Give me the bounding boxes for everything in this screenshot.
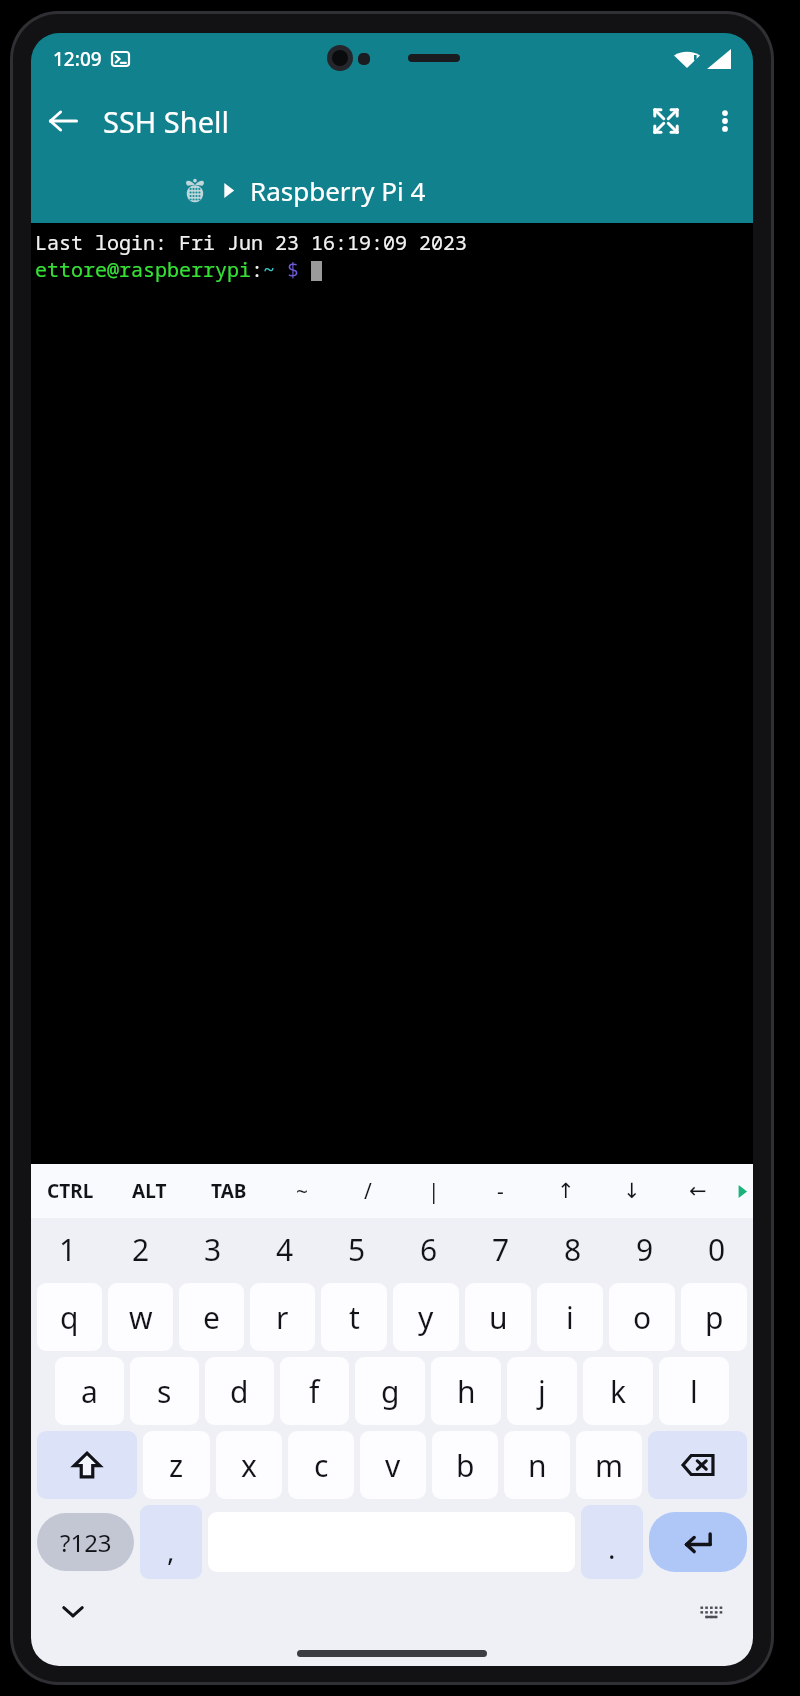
button[interactable]: . <box>581 1505 643 1579</box>
staticText: Raspberry Pi 4 <box>250 173 426 208</box>
button[interactable]: s <box>130 1357 199 1425</box>
button[interactable]: x <box>216 1431 282 1499</box>
staticText: p <box>705 1297 724 1338</box>
staticText: b <box>456 1445 475 1486</box>
staticText: SSH Shell <box>103 102 230 141</box>
staticText: | <box>428 1177 440 1206</box>
staticText: / <box>364 1177 372 1206</box>
staticText: 7 <box>492 1229 510 1270</box>
staticText: a <box>81 1371 98 1412</box>
staticText: ← <box>689 1179 707 1203</box>
button[interactable]: More options <box>697 93 753 149</box>
button[interactable]: 6 <box>393 1218 465 1280</box>
staticText: k <box>610 1371 627 1412</box>
button[interactable]: , <box>140 1505 202 1579</box>
button[interactable]: ALT <box>110 1164 189 1218</box>
button[interactable]: Enter <box>649 1512 747 1572</box>
button[interactable]: CTRL <box>31 1164 110 1218</box>
button[interactable]: ~ <box>269 1164 335 1218</box>
button[interactable]: y <box>393 1283 459 1351</box>
staticText: t <box>349 1297 360 1338</box>
button[interactable]: Fullscreen <box>635 90 697 152</box>
button[interactable]: o <box>609 1283 675 1351</box>
staticText: w <box>129 1297 153 1338</box>
button[interactable]: 4 <box>249 1218 321 1280</box>
button[interactable]: g <box>355 1357 425 1425</box>
staticText: Last login: Fri Jun 23 16:19:09 2023 <box>35 229 467 256</box>
button[interactable]: h <box>431 1357 501 1425</box>
staticText: u <box>489 1297 508 1338</box>
staticText: ?123 <box>60 1526 112 1559</box>
staticText: r <box>276 1297 289 1338</box>
button[interactable]: Backspace <box>648 1431 747 1499</box>
button[interactable]: j <box>507 1357 577 1425</box>
staticText: . <box>608 1529 616 1567</box>
button[interactable]: w <box>108 1283 173 1351</box>
button[interactable]: ← <box>665 1164 731 1218</box>
button[interactable]: n <box>504 1431 570 1499</box>
staticText: 2 <box>132 1229 150 1270</box>
button[interactable]: k <box>583 1357 653 1425</box>
button[interactable]: 1 <box>31 1218 104 1280</box>
staticText: , <box>167 1531 175 1569</box>
button[interactable]: 2 <box>104 1218 177 1280</box>
button[interactable]: z <box>143 1431 210 1499</box>
button[interactable]: f <box>280 1357 349 1425</box>
button[interactable]: i <box>537 1283 603 1351</box>
button[interactable]: a <box>55 1357 124 1425</box>
button[interactable]: | <box>401 1164 467 1218</box>
staticText: j <box>538 1371 546 1412</box>
button[interactable]: p <box>681 1283 747 1351</box>
staticText: 9 <box>636 1229 654 1270</box>
staticText: q <box>60 1297 79 1338</box>
button[interactable]: 7 <box>465 1218 537 1280</box>
button[interactable]: 5 <box>321 1218 393 1280</box>
button[interactable]: l <box>659 1357 729 1425</box>
button[interactable]: 3 <box>177 1218 249 1280</box>
staticText: s <box>157 1371 172 1412</box>
button[interactable]: ?123 <box>37 1513 134 1571</box>
button[interactable]: c <box>288 1431 354 1499</box>
button[interactable]: t <box>321 1283 387 1351</box>
staticText: ettore@raspberrypi:~ $ <box>35 256 311 283</box>
staticText: ~ <box>296 1177 309 1206</box>
staticText: l <box>690 1371 698 1412</box>
staticText: 6 <box>420 1229 438 1270</box>
staticText: v <box>385 1445 401 1486</box>
button[interactable]: ↓ <box>599 1164 665 1218</box>
staticText: c <box>314 1445 329 1486</box>
button[interactable]: 9 <box>609 1218 681 1280</box>
staticText: 4 <box>276 1229 294 1270</box>
button[interactable]: 0 <box>681 1218 753 1280</box>
button[interactable]: Shift <box>37 1431 137 1499</box>
staticText: 3 <box>204 1229 222 1270</box>
button[interactable]: u <box>465 1283 531 1351</box>
button[interactable]: Hide keyboard <box>51 1589 95 1633</box>
button[interactable]: m <box>576 1431 642 1499</box>
staticText: 8 <box>564 1229 582 1270</box>
button[interactable]: v <box>360 1431 426 1499</box>
button[interactable]: d <box>205 1357 274 1425</box>
button[interactable]: - <box>467 1164 533 1218</box>
button[interactable]: q <box>37 1283 102 1351</box>
staticText: y <box>418 1297 434 1338</box>
button[interactable]: 8 <box>537 1218 609 1280</box>
button[interactable]: e <box>179 1283 244 1351</box>
button[interactable]: Raspberry Pi 4 <box>31 157 753 223</box>
button[interactable]: TAB <box>189 1164 269 1218</box>
button[interactable]: / <box>335 1164 401 1218</box>
button[interactable]: ↑ <box>533 1164 599 1218</box>
button[interactable]: b <box>432 1431 498 1499</box>
staticText: ALT <box>132 1178 167 1204</box>
button[interactable]: r <box>250 1283 315 1351</box>
button[interactable]: More keys <box>731 1164 753 1218</box>
staticText: g <box>381 1371 400 1412</box>
staticText: m <box>595 1445 624 1486</box>
staticText: ↓ <box>623 1179 641 1203</box>
staticText: 5 <box>348 1229 366 1270</box>
staticText: e <box>203 1297 220 1338</box>
staticText: TAB <box>211 1178 247 1204</box>
button[interactable]: Switch keyboard <box>689 1589 733 1633</box>
button[interactable]: Back <box>31 89 95 153</box>
